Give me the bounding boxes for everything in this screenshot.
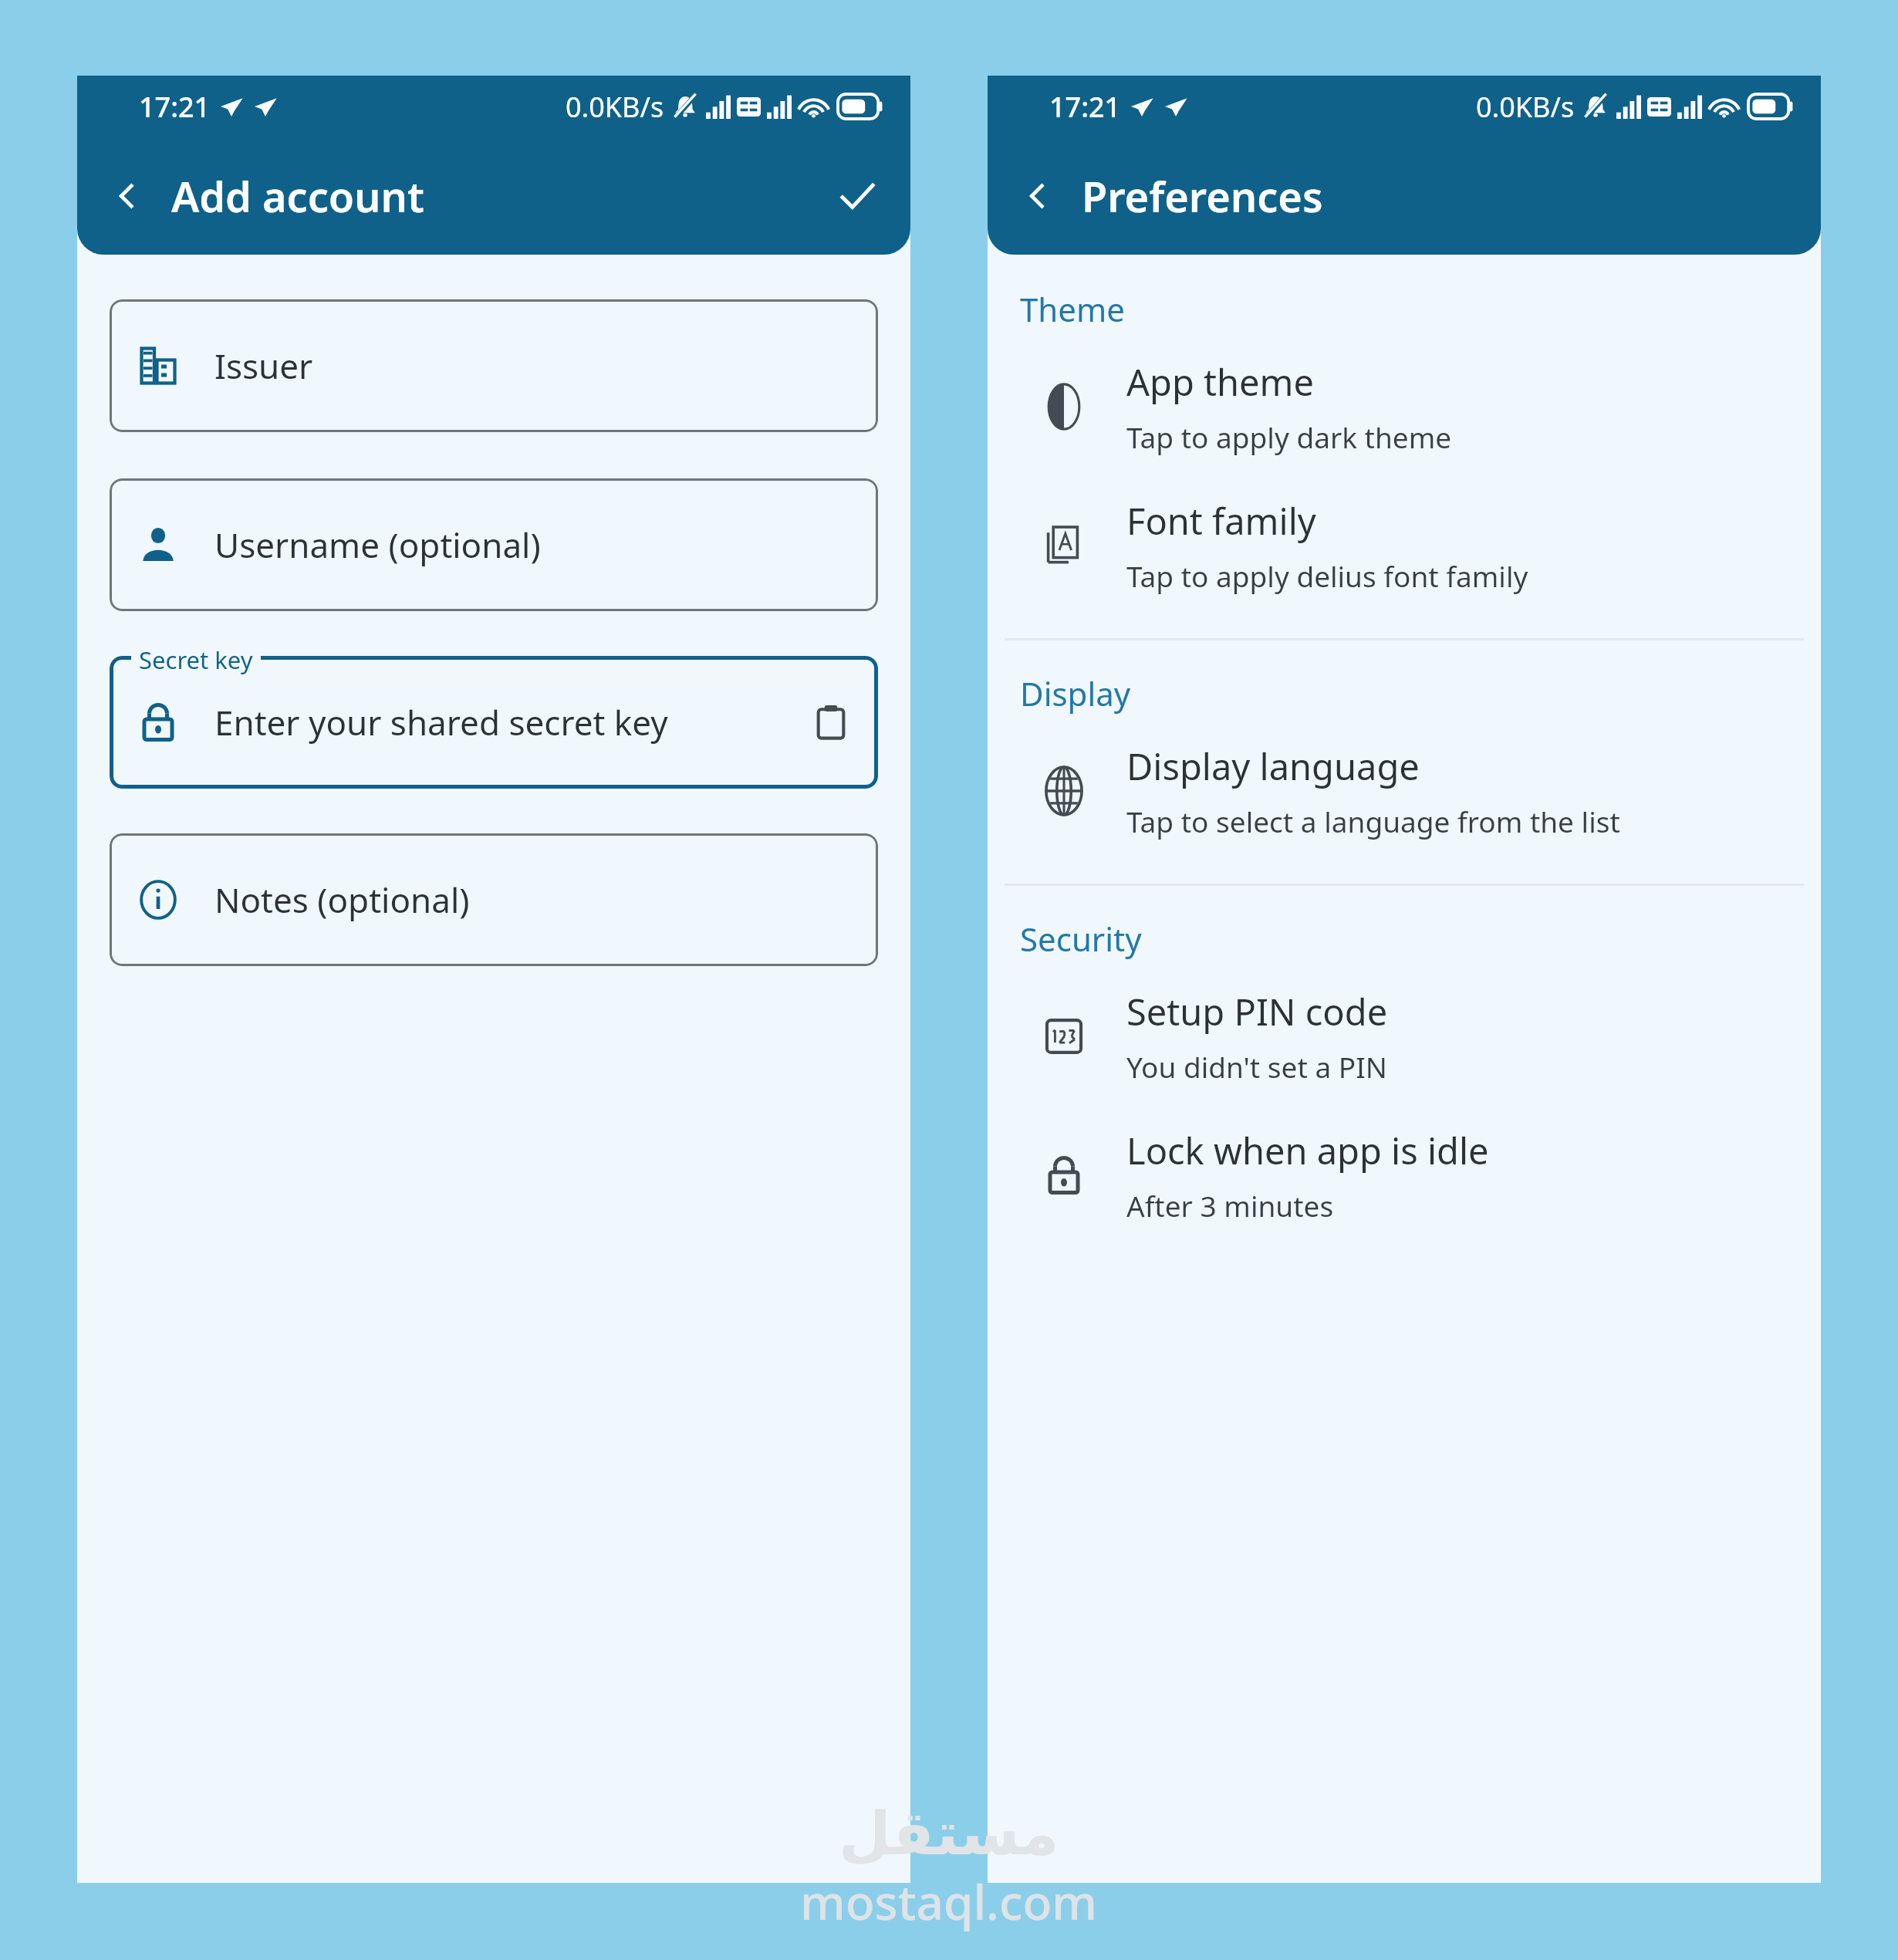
button[interactable]: Issuer — [110, 299, 878, 432]
staticText: 17:21 — [139, 88, 211, 126]
staticText: Setup PIN code — [1126, 987, 1388, 1036]
staticText: After 3 minutes — [1126, 1186, 1334, 1225]
button[interactable]: Font family — [988, 476, 1821, 615]
staticText: Display — [1020, 671, 1131, 715]
button[interactable]: Display language — [988, 721, 1821, 860]
staticText: Issuer — [214, 343, 313, 389]
staticText: App theme — [1126, 357, 1315, 407]
staticText: Tap to apply delius font family — [1126, 556, 1528, 595]
staticText: Secret key — [139, 644, 253, 676]
staticText: 17:21 — [1049, 88, 1121, 126]
staticText: mostaql.com — [800, 1869, 1098, 1934]
staticText: Security — [1020, 917, 1142, 961]
staticText: Theme — [1020, 287, 1125, 331]
staticText: Display language — [1126, 742, 1420, 791]
button[interactable]: App theme — [988, 337, 1821, 476]
staticText: Enter your shared secret key — [214, 699, 668, 745]
button[interactable]: Back — [97, 166, 157, 226]
button[interactable]: Enter your shared secret key — [110, 656, 878, 789]
button[interactable]: Paste from clipboard — [810, 701, 852, 743]
staticText: مستقل — [839, 1799, 1059, 1869]
staticText: 0.0KB/s — [1476, 88, 1575, 126]
staticText: Font family — [1126, 496, 1316, 546]
button[interactable]: Save account — [824, 163, 890, 229]
staticText: You didn't set a PIN — [1126, 1047, 1387, 1086]
staticText: Tap to apply dark theme — [1126, 417, 1452, 456]
button[interactable]: Lock when app is idle — [988, 1106, 1821, 1245]
button[interactable]: Back — [1008, 166, 1068, 226]
button[interactable]: Notes (optional) — [110, 833, 878, 966]
button[interactable]: Username (optional) — [110, 478, 878, 611]
staticText: Tap to select a language from the list — [1126, 802, 1620, 840]
button[interactable]: Setup PIN code — [988, 967, 1821, 1106]
staticText: Username (optional) — [214, 522, 541, 568]
staticText: Notes (optional) — [214, 877, 470, 923]
staticText: 0.0KB/s — [566, 88, 664, 126]
staticText: Lock when app is idle — [1126, 1126, 1489, 1175]
staticText: Add account — [171, 167, 424, 225]
staticText: Preferences — [1082, 167, 1323, 225]
